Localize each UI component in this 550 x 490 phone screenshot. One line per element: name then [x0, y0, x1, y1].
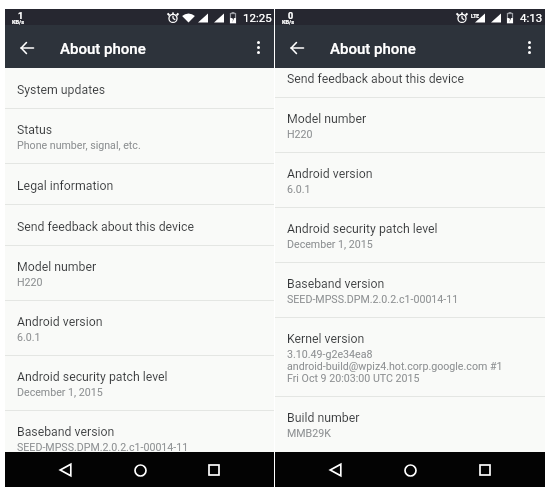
staticText: December 1, 2015 — [17, 386, 103, 398]
button[interactable]: Kernel version — [275, 318, 545, 397]
staticText: android-build@wpiz4.hot.corp.google.com … — [287, 360, 503, 372]
button[interactable]: Android version — [5, 301, 274, 356]
staticText: MMB29K — [287, 427, 331, 439]
button[interactable]: Home — [395, 455, 425, 485]
button[interactable]: Model number — [275, 98, 545, 153]
staticText: About phone — [330, 40, 416, 58]
staticText: Model number — [17, 260, 97, 274]
staticText: KB/s — [282, 19, 295, 26]
staticText: Send feedback about this device — [17, 220, 194, 234]
staticText: About phone — [60, 40, 146, 58]
staticText: Android version — [17, 315, 103, 329]
button[interactable]: Baseband version — [275, 263, 545, 318]
staticText: Baseband version — [17, 425, 115, 439]
button[interactable]: Navigate up — [11, 32, 43, 64]
button[interactable]: Build number — [275, 397, 545, 441]
staticText: Model number — [287, 112, 367, 126]
staticText: Android security patch level — [17, 370, 168, 384]
button[interactable]: Send feedback about this device — [275, 68, 545, 98]
staticText: Fri Oct 9 20:03:00 UTC 2015 — [287, 372, 420, 384]
staticText: Send feedback about this device — [287, 72, 464, 86]
button[interactable]: Send feedback about this device — [5, 205, 274, 246]
staticText: 0 — [288, 11, 294, 22]
staticText: H220 — [287, 128, 313, 140]
button[interactable]: More options — [243, 32, 273, 62]
staticText: Android version — [287, 167, 373, 181]
button[interactable]: Home — [125, 455, 155, 485]
button[interactable]: Recent apps — [199, 455, 229, 485]
staticText: Baseband version — [287, 277, 385, 291]
staticText: 4:13 — [520, 11, 543, 24]
button[interactable]: Legal information — [5, 164, 274, 205]
button[interactable]: Recent apps — [470, 455, 500, 485]
staticText: 6.0.1 — [287, 183, 311, 195]
button[interactable]: Model number — [5, 246, 274, 301]
button[interactable]: Baseband version — [5, 411, 274, 452]
button[interactable]: Navigate up — [281, 32, 313, 64]
staticText: Build number — [287, 411, 360, 425]
staticText: LTE — [471, 13, 480, 19]
button[interactable]: Back — [320, 455, 350, 485]
button[interactable]: More options — [514, 32, 544, 62]
staticText: 12:25 — [243, 11, 272, 24]
staticText: Status — [17, 123, 53, 137]
button[interactable]: System updates — [5, 68, 274, 109]
staticText: December 1, 2015 — [287, 238, 373, 250]
button[interactable]: Android security patch level — [275, 208, 545, 263]
staticText: Kernel version — [287, 332, 365, 346]
staticText: 6.0.1 — [17, 331, 41, 343]
button[interactable]: Android security patch level — [5, 356, 274, 411]
staticText: Phone number, signal, etc. — [17, 139, 141, 151]
staticText: Legal information — [17, 179, 114, 193]
button[interactable]: Back — [50, 455, 80, 485]
staticText: System updates — [17, 83, 106, 97]
staticText: 1 — [18, 11, 24, 22]
staticText: 3.10.49-g2e34ea8 — [287, 348, 373, 360]
button[interactable]: Android version — [275, 153, 545, 208]
staticText: Android security patch level — [287, 222, 438, 236]
staticText: SEED-MPSS.DPM.2.0.2.c1-00014-11 — [287, 293, 459, 305]
button[interactable]: Status — [5, 109, 274, 164]
staticText: H220 — [17, 276, 43, 288]
staticText: SEED-MPSS.DPM.2.0.2.c1-00014-11 — [17, 441, 189, 452]
staticText: KB/s — [12, 19, 25, 26]
